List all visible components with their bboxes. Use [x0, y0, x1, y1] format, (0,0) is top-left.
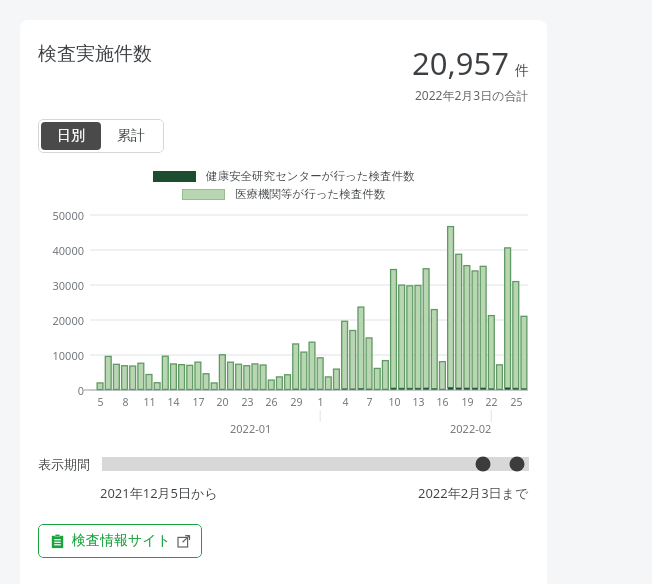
- staticText: 0: [77, 383, 84, 398]
- staticText: 7: [366, 395, 373, 409]
- staticText: 医療機関等が行った検査件数: [235, 187, 386, 201]
- staticText: 25: [510, 395, 523, 409]
- staticText: 表示期間: [38, 456, 90, 472]
- staticText: 14: [167, 395, 180, 409]
- staticText: 2022-01: [230, 421, 272, 436]
- staticText: 2022-02: [450, 421, 492, 436]
- button[interactable]: 累計: [101, 122, 161, 150]
- staticText: 17: [192, 395, 205, 409]
- staticText: 2022年2月3日まで: [418, 484, 529, 502]
- other: 外部リンクを開く: [178, 535, 190, 547]
- staticText: 1: [317, 395, 324, 409]
- staticText: 件: [515, 62, 529, 80]
- staticText: 19: [461, 395, 474, 409]
- staticText: 10: [388, 395, 401, 409]
- staticText: 10000: [52, 348, 84, 363]
- staticText: 40000: [52, 243, 84, 258]
- staticText: 2022年2月3日の合計: [415, 87, 529, 103]
- staticText: 22: [485, 395, 498, 409]
- staticText: 16: [436, 395, 449, 409]
- staticText: 20,957: [412, 42, 509, 84]
- button[interactable]: 日別: [41, 122, 101, 150]
- staticText: 4: [342, 395, 349, 409]
- button[interactable]: [102, 453, 529, 475]
- staticText: 8: [122, 395, 129, 409]
- staticText: 13: [412, 395, 425, 409]
- staticText: 30000: [52, 278, 84, 293]
- staticText: 日別: [57, 127, 85, 145]
- staticText: 26: [265, 395, 278, 409]
- staticText: 20000: [52, 313, 84, 328]
- staticText: 11: [143, 395, 156, 409]
- staticText: 検査情報サイト: [72, 532, 171, 550]
- staticText: 検査実施件数: [38, 42, 152, 66]
- staticText: 23: [241, 395, 254, 409]
- staticText: 累計: [117, 127, 145, 145]
- staticText: 20: [216, 395, 229, 409]
- staticText: 健康安全研究センターが行った検査件数: [206, 169, 415, 183]
- staticText: 5: [97, 395, 104, 409]
- button[interactable]: 検査情報サイト: [38, 524, 202, 558]
- staticText: 50000: [52, 208, 84, 223]
- staticText: 2021年12月5日から: [100, 484, 218, 502]
- staticText: 29: [290, 395, 303, 409]
